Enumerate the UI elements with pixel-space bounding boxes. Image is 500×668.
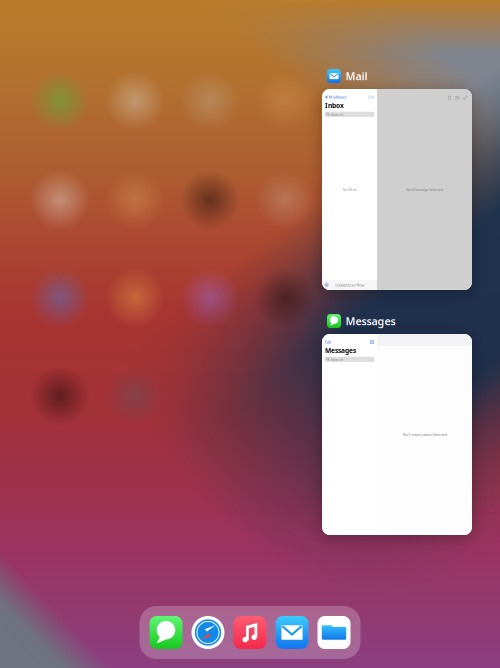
staticText: Messages (325, 346, 356, 355)
button[interactable]: Mail (327, 69, 368, 83)
button[interactable]: Mail (275, 616, 308, 649)
staticText: Messages (346, 314, 396, 328)
staticText: Mailboxes (329, 94, 347, 100)
staticText: No Message Selected (406, 187, 443, 192)
button[interactable]: Files (317, 616, 350, 649)
button[interactable]: Messages (149, 616, 182, 649)
button[interactable]: Safari (191, 616, 224, 649)
button[interactable]: Music (233, 616, 266, 649)
staticText: Updated Just Now (334, 282, 364, 288)
staticText: Search (331, 357, 343, 362)
staticText: Inbox (325, 101, 344, 110)
staticText: Mail (346, 69, 368, 83)
staticText: No Conversation Selected (402, 432, 446, 437)
staticText: Edit (368, 94, 374, 100)
staticText: Edit (325, 339, 331, 345)
button[interactable]: Messages (327, 314, 396, 328)
staticText: No Mail (342, 187, 356, 192)
button[interactable]: Messages window (322, 334, 472, 535)
button[interactable]: Mail window (322, 89, 472, 290)
staticText: Search (331, 112, 343, 117)
